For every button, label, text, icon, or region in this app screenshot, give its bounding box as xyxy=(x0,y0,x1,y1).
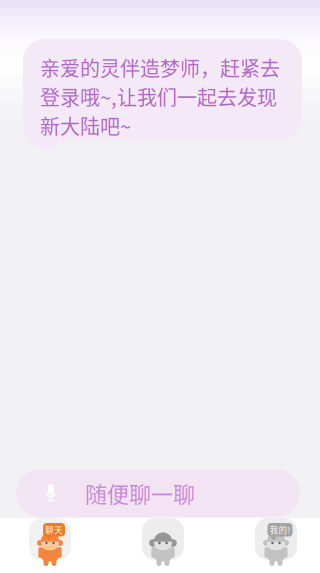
staticText: 随便聊一聊 xyxy=(85,477,195,509)
button[interactable]: 音乐 xyxy=(142,518,184,566)
button[interactable]: 聊天 xyxy=(29,518,71,566)
staticText: 亲爱的灵伴造梦师，赶紧去登录哦~,让我们一起去发现新大陆吧~ xyxy=(40,53,280,140)
staticText: 聊天 xyxy=(45,523,63,536)
button[interactable]: 我的 xyxy=(255,518,297,566)
staticText: 我的! xyxy=(269,523,290,536)
button[interactable]: 随便聊一聊 xyxy=(16,469,300,517)
